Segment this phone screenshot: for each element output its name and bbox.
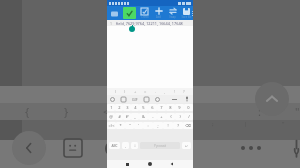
staticText: ↵ [185,144,188,148]
staticText: _ [134,114,136,119]
staticText: " [295,104,300,119]
staticText: ( [170,114,172,119]
button[interactable]: ↵ [182,142,191,149]
staticText: # [118,114,121,119]
button[interactable]: ₽ [123,113,131,120]
staticText: { [25,104,30,119]
staticText: , [164,89,166,94]
staticText: = [144,89,147,94]
button[interactable]: Scroll to top [255,82,289,116]
button[interactable]: ' [134,122,143,129]
button[interactable]: ; [153,122,163,129]
button[interactable]: * [116,122,125,129]
staticText: ? [177,123,179,128]
staticText: ⌫ [185,123,191,128]
button[interactable]: ( [166,113,175,120]
staticText: Русский [154,144,167,148]
button[interactable]: Sticker [121,97,126,102]
button[interactable]: - [148,113,157,120]
staticText: : [147,123,149,128]
button[interactable]: 4 [131,104,139,111]
staticText: 1 [110,21,113,26]
button[interactable]: Home [148,162,152,166]
button[interactable]: @ [107,113,115,120]
button[interactable]: # [115,113,123,120]
button[interactable]: 6 [148,104,157,111]
button[interactable]: 2 [115,104,123,111]
button[interactable]: & [139,113,148,120]
button[interactable]: Sticker [144,97,149,102]
button[interactable]: Open drawer [110,9,119,18]
staticText: Save file [181,15,192,19]
button[interactable]: + [157,113,166,120]
staticText: @ [109,114,113,119]
button[interactable]: 5 [139,104,148,111]
button[interactable]: 9 [175,104,184,111]
staticText: & [142,114,145,119]
button[interactable]: 7 [157,104,166,111]
staticText: Check [141,15,149,19]
staticText: Swap [169,15,176,19]
staticText: + [160,114,163,119]
staticText: 2 [118,105,121,110]
staticText: 7 [160,105,163,110]
staticText: 0 [187,105,190,110]
button[interactable]: Русский [140,142,180,149]
staticText: 8 [169,105,172,110]
staticText: 6 [151,105,154,110]
staticText: / [188,114,190,119]
staticText: Add [156,15,161,19]
button[interactable]: ! [163,122,173,129]
staticText: GI [104,137,123,160]
button[interactable]: Emoji [110,97,115,102]
staticText: 3 [126,105,129,110]
button[interactable]: Swap [167,7,178,19]
staticText: ₽ [126,114,129,119]
button[interactable]: More options [192,6,193,20]
button[interactable]: _ [131,113,139,120]
button[interactable]: ) [175,113,184,120]
button[interactable]: 0 [184,104,193,111]
staticText: ? [183,89,185,94]
button[interactable]: ⌷ [131,142,138,149]
button[interactable]: Save file [181,8,192,19]
staticText: * [119,123,122,128]
staticText: 5 [142,105,145,110]
button[interactable]: 3 [123,104,131,111]
button[interactable]: / [184,113,193,120]
staticText: 9 [178,105,181,110]
button[interactable]: " [125,122,134,129]
button[interactable]: 1 [107,104,115,111]
button[interactable]: Voice input [184,96,190,102]
staticText: ! [167,123,169,128]
staticText: ⌷ [134,144,136,147]
staticText: ( [115,89,117,94]
button[interactable]: Save [123,7,136,19]
staticText: - [152,114,154,119]
staticText: : [258,104,261,119]
button[interactable]: , [122,142,129,149]
staticText: , [125,144,126,148]
button[interactable]: Check [139,8,150,19]
staticText: GIF [132,97,138,102]
button[interactable]: ⌫ [183,122,193,129]
staticText: " [129,123,131,128]
staticText: < [103,104,110,119]
staticText: ABC [111,144,118,148]
staticText: 1 [110,105,113,110]
button[interactable]: ? [173,122,183,129]
staticText: field, 7629,9764, 12211, 16644, 17648 [116,21,183,26]
button[interactable]: 8 [166,104,175,111]
button[interactable]: Emoji [155,97,160,102]
staticText: ' [138,123,139,128]
staticText: ) [179,114,181,119]
button[interactable]: Add [153,7,164,19]
button[interactable]: Back [170,162,174,166]
button[interactable]: =\< [107,122,116,129]
button[interactable]: ABC [109,142,120,149]
